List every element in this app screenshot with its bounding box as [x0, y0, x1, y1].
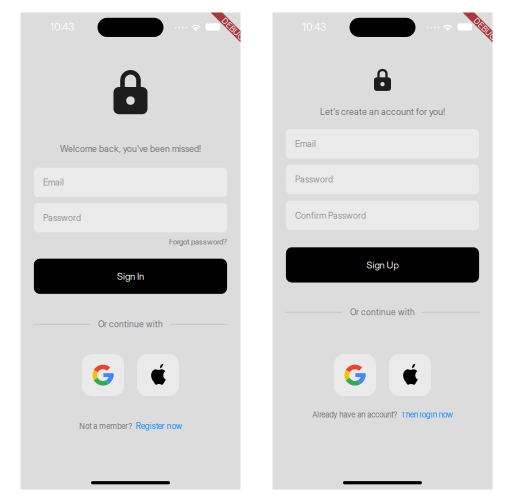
button[interactable]: Continue with Google — [334, 354, 376, 396]
staticText: Not a member? — [79, 421, 132, 431]
staticText: Already have an account? — [312, 410, 397, 419]
staticText: Confirm Password — [295, 210, 366, 221]
staticText: Password — [43, 212, 81, 223]
staticText: 10:43 — [302, 21, 326, 33]
staticText: Sign In — [117, 270, 144, 282]
button[interactable]: Confirm Password — [286, 201, 479, 230]
staticText: Or continue with — [350, 307, 415, 317]
staticText: Register now — [136, 421, 182, 431]
button[interactable]: Continue with Google — [82, 354, 124, 396]
button[interactable]: Forgot password? — [34, 237, 227, 246]
staticText: Sign Up — [366, 259, 398, 271]
button[interactable]: Continue with Apple — [389, 354, 431, 396]
staticText: Or continue with — [98, 319, 163, 329]
staticText: 10:43 — [50, 21, 74, 33]
staticText: DEBUG — [219, 24, 247, 34]
button[interactable]: Password — [286, 165, 479, 194]
button[interactable]: Not a member? — [79, 421, 182, 431]
staticText: Email — [295, 138, 316, 149]
staticText: Welcome back, you've been missed! — [60, 143, 201, 154]
button[interactable]: Sign In — [34, 259, 227, 294]
button[interactable]: Sign Up — [286, 247, 479, 282]
button[interactable]: Password — [34, 203, 227, 232]
button[interactable]: Email — [34, 168, 227, 197]
staticText: DEBUG — [471, 24, 499, 34]
staticText: Password — [295, 174, 333, 185]
staticText: Forgot password? — [169, 237, 227, 246]
button[interactable]: Continue with Apple — [137, 354, 179, 396]
staticText: Email — [43, 177, 64, 188]
button[interactable]: Already have an account? — [312, 410, 453, 420]
staticText: Then login now — [401, 410, 453, 420]
staticText: Let's create an account for you! — [320, 106, 445, 117]
button[interactable]: Email — [286, 129, 479, 159]
